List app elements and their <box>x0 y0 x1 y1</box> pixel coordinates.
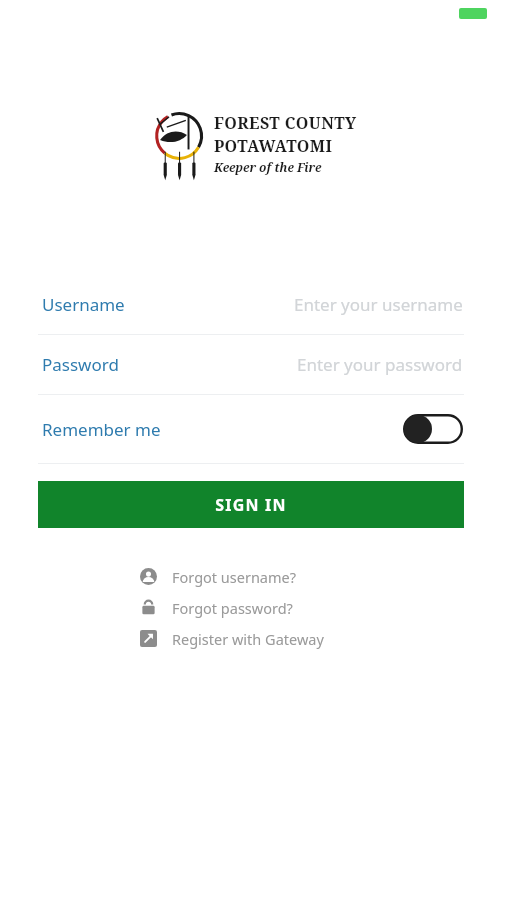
button[interactable]: Forgot password? <box>0 592 507 623</box>
button[interactable]: Remember me toggle <box>403 414 463 444</box>
button[interactable]: Remember me <box>0 395 507 463</box>
staticText: Forgot username? <box>172 567 297 587</box>
staticText: Remember me <box>42 418 161 441</box>
staticText: SIGN IN <box>215 494 287 516</box>
staticText: Forgot password? <box>172 598 293 618</box>
button[interactable]: Register with Gateway <box>0 623 507 654</box>
staticText: Username <box>42 293 125 316</box>
staticText: Password <box>42 353 119 376</box>
button[interactable]: SIGN IN <box>38 481 464 528</box>
staticText: POTAWATOMI <box>214 135 333 157</box>
button[interactable]: Password <box>0 335 507 394</box>
button[interactable]: Username <box>0 275 507 334</box>
staticText: Keeper of the Fire <box>214 159 322 175</box>
button[interactable]: Forgot username? <box>0 561 507 592</box>
staticText: FOREST COUNTY <box>214 112 357 134</box>
staticText: Enter your username <box>294 293 463 316</box>
staticText: Register with Gateway <box>172 629 324 649</box>
staticText: Enter your password <box>297 353 463 376</box>
